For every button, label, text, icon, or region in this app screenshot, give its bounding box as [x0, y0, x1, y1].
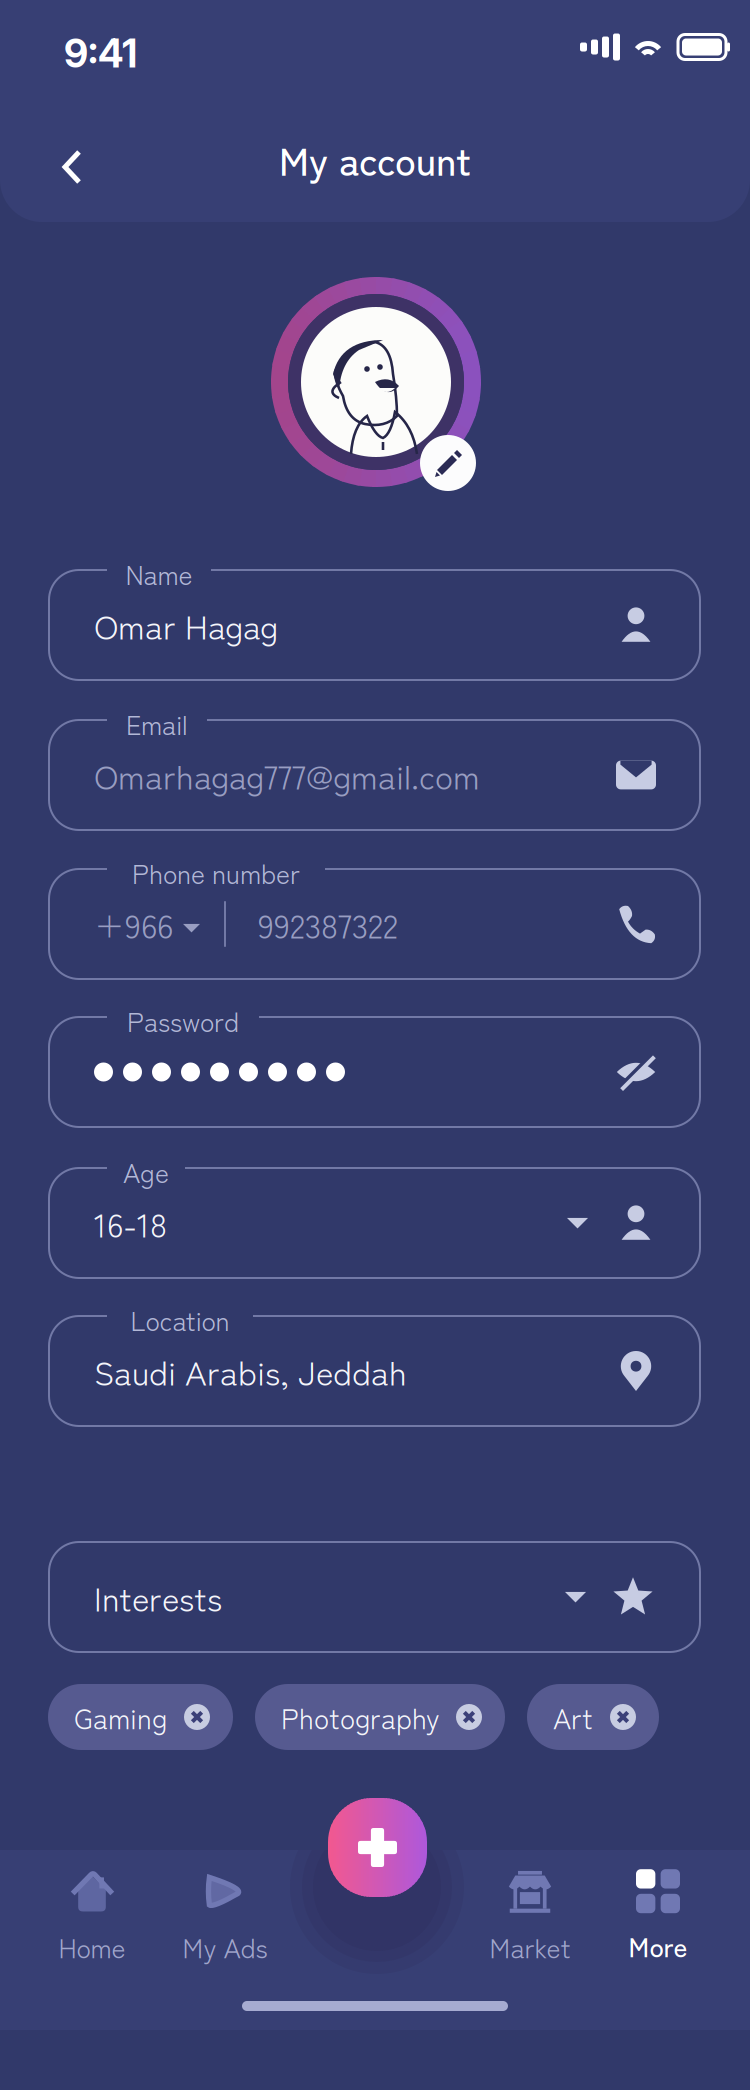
button[interactable]: 16-18	[49, 1168, 700, 1278]
button[interactable]: My Ads	[150, 1862, 300, 1972]
staticText: More	[628, 1926, 687, 1965]
button[interactable]: Photography	[255, 1684, 505, 1750]
staticText: Age	[123, 1152, 169, 1191]
staticText: Interests	[94, 1573, 222, 1621]
button[interactable]: Add	[328, 1798, 427, 1897]
staticText: Name	[125, 554, 192, 593]
staticText: Gaming	[74, 1697, 167, 1737]
staticText: Omarhagag777@gmail.com	[94, 751, 480, 799]
staticText: 16-18	[94, 1199, 167, 1247]
staticText: Market	[489, 1927, 570, 1966]
staticText: Saudi Arabis, Jeddah	[94, 1347, 407, 1395]
staticText: Home	[58, 1927, 125, 1966]
staticText: +966	[94, 900, 173, 948]
button[interactable]: Market	[455, 1862, 605, 1972]
staticText: Password	[127, 1001, 239, 1040]
staticText: My Ads	[182, 1927, 267, 1966]
staticText: Photography	[281, 1697, 439, 1737]
staticText: Email	[126, 704, 188, 743]
button[interactable]: Password	[49, 1017, 700, 1127]
button[interactable]: Saudi Arabis, Jeddah	[49, 1316, 700, 1426]
staticText: Art	[553, 1697, 593, 1737]
staticText: 992387322	[258, 900, 398, 948]
button[interactable]: Gaming	[48, 1684, 233, 1750]
staticText: Phone number	[132, 853, 300, 892]
button[interactable]: Art	[527, 1684, 659, 1750]
staticText: My account	[279, 131, 471, 187]
button[interactable]: Interests	[49, 1542, 700, 1652]
button[interactable]: Omarhagag777@gmail.com	[49, 720, 700, 830]
button[interactable]: More	[583, 1862, 733, 1972]
staticText: 9:41	[64, 30, 137, 77]
button[interactable]: +966	[49, 869, 700, 979]
button[interactable]: Edit photo	[420, 435, 476, 491]
button[interactable]: Omar Hagag	[49, 570, 700, 680]
button[interactable]: Back	[42, 130, 102, 204]
button[interactable]: Home	[17, 1862, 167, 1972]
staticText: Omar Hagag	[94, 601, 278, 649]
staticText: Location	[130, 1300, 229, 1339]
